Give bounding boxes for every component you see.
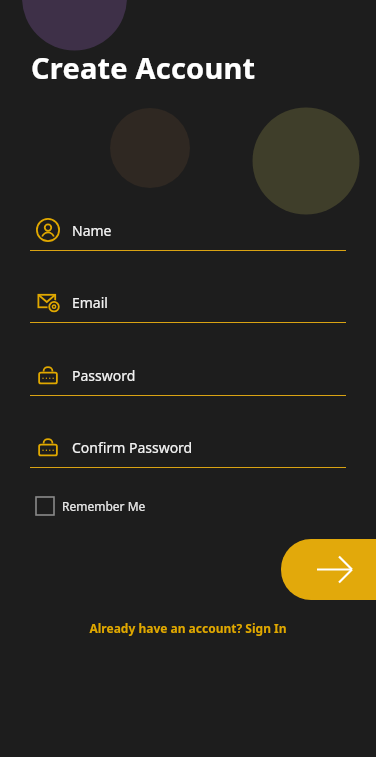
button[interactable]: Password [28, 359, 346, 397]
staticText: Name [72, 221, 112, 240]
staticText: Email [72, 293, 108, 312]
button[interactable]: Sign up [281, 539, 376, 600]
button[interactable]: Already have an account? Sign In [60, 616, 316, 640]
button[interactable]: Remember Me [30, 492, 190, 520]
staticText: Password [72, 366, 136, 385]
staticText: Confirm Password [72, 438, 193, 457]
button[interactable]: Confirm Password [28, 431, 346, 469]
staticText: Create Account [31, 48, 256, 87]
button[interactable]: Email [28, 286, 346, 324]
staticText: Remember Me [62, 498, 146, 514]
button[interactable]: Name [28, 214, 346, 252]
staticText: Already have an account? Sign In [89, 620, 287, 636]
